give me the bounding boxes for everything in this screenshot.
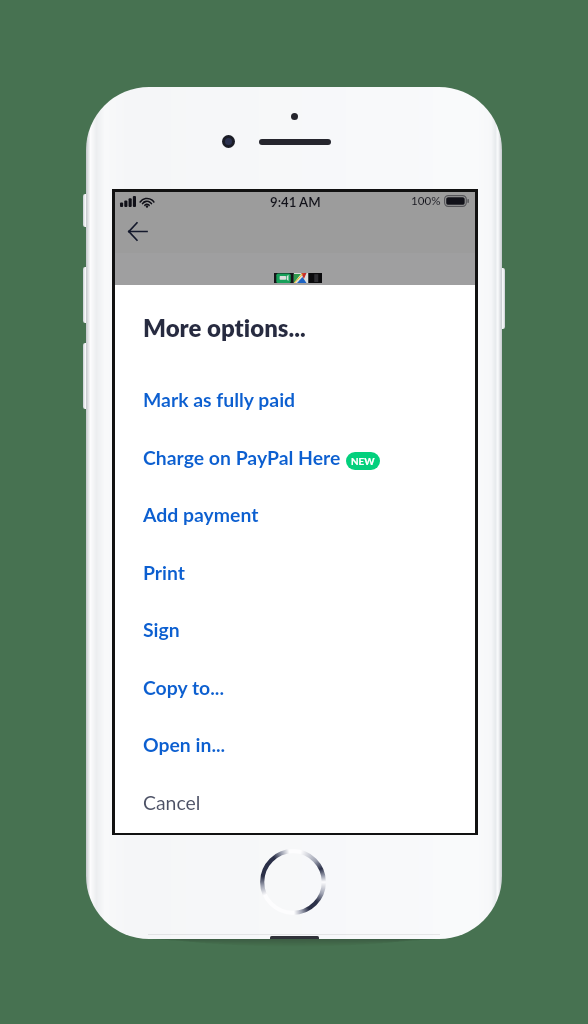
button[interactable]: Open in... [115,724,475,764]
staticText: 100% [411,194,441,208]
button[interactable]: Cancel [115,782,475,822]
button[interactable]: More options... [143,313,306,342]
button[interactable]: Print [115,552,475,592]
button[interactable]: Add payment [115,494,475,534]
staticText: Add payment [143,503,259,526]
button[interactable]: Charge on PayPal Here [115,437,475,477]
staticText: Charge on PayPal Here [143,446,341,469]
staticText: Open in... [143,733,226,756]
staticText: NEW [351,455,375,467]
button[interactable]: Back [117,211,157,251]
staticText: Print [143,561,186,584]
button[interactable]: Copy to... [115,667,475,707]
staticText: Copy to... [143,676,225,699]
button[interactable]: Mark as fully paid [115,379,475,419]
staticText: Cancel [143,791,201,814]
staticText: Mark as fully paid [143,388,296,411]
button[interactable]: Sign [115,609,475,649]
staticText: 9:41 AM [270,194,321,210]
staticText: Sign [143,618,180,641]
